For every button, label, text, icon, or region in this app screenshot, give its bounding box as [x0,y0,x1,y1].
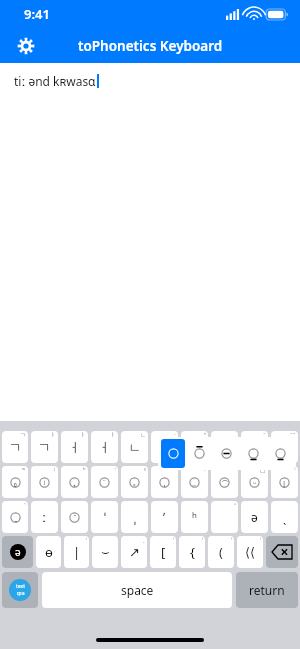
button[interactable]: ㄴ [121,431,148,463]
button[interactable]: ₊ [61,466,88,498]
staticText: ˈ [173,536,174,544]
staticText: ɵ [45,543,53,561]
staticText: toPhonetics Keyboard [78,37,223,55]
staticText: ˜˜ [290,431,296,439]
button[interactable]: ㄱ [2,431,28,463]
button[interactable]: ˌ [211,431,238,463]
button[interactable]: return [236,572,298,608]
staticText: ˎ [143,536,145,544]
staticText: ⌣ [101,546,110,559]
staticText: tiː ənd kʀwasɑ [14,73,96,89]
staticText: text [16,583,25,590]
button[interactable]: Backspace [266,536,298,568]
staticText: ə [251,509,258,525]
staticText: ₌ [133,478,136,488]
button[interactable]: ʲ [31,466,58,498]
staticText: ㅏ [80,431,86,439]
button[interactable]: .. [181,466,208,498]
staticText: ₊ [73,478,76,488]
button[interactable]: { [179,536,205,568]
staticText: .. [192,478,197,488]
button[interactable]: ⟨⟨ [237,536,263,568]
button[interactable]: ͡ [211,466,238,498]
staticText: ˺ [114,466,116,474]
staticText: ə [15,545,21,559]
button[interactable]: Settings [14,34,38,58]
button[interactable]: ː [31,501,58,533]
staticText: ʰ [83,466,86,474]
staticText: ˑ [174,431,176,439]
staticText: ˈ [231,536,232,544]
button[interactable]: ˌ [151,466,178,498]
button[interactable]: space [42,572,232,608]
staticText: ʲ [54,466,56,474]
staticText: ʷ [22,466,26,474]
button[interactable]: ˎ [271,501,298,533]
staticText: ㅏ [110,431,116,439]
button[interactable]: ( [208,536,234,568]
staticText: ↗ [129,545,140,560]
button[interactable]: ˈ [91,501,118,533]
staticText: ˎ [283,509,287,525]
button[interactable]: ㄱ [31,431,58,463]
button[interactable]: ¨ [91,466,118,498]
button[interactable]: ₀ [2,466,28,498]
button[interactable]: ˜˜ [271,431,298,463]
staticText: ˌ [134,509,136,525]
button[interactable]: ʼ [151,501,178,533]
staticText: ː [42,508,47,526]
staticText: ʴ [234,501,236,509]
staticText: 9:41 [24,5,50,23]
staticText: | [73,543,81,561]
staticText: return [249,582,285,598]
staticText: ʰ [192,509,197,525]
button[interactable]: | [271,466,298,498]
button[interactable]: ㅓ [61,431,88,463]
button[interactable]: ˈˈ [181,431,208,463]
button[interactable]: Switch symbols [2,536,33,568]
staticText: ㄱ [9,439,22,455]
staticText: ʲ [44,478,46,488]
button[interactable]: Switch keyboard [2,572,38,608]
staticText: ㄱ [20,431,26,439]
button[interactable]: ⌣ [92,536,118,568]
staticText: ˈ [86,536,87,544]
staticText: ᵑ [203,466,206,474]
staticText: ˈ [104,509,106,525]
button[interactable]: ᵕ [241,466,268,498]
button[interactable] [241,439,266,468]
button[interactable] [187,439,212,468]
button[interactable]: ˜ [241,431,268,463]
button[interactable] [161,439,185,468]
button[interactable]: ̆ [61,501,88,533]
staticText: ˌ [235,431,236,439]
staticText: □ [260,466,266,473]
button[interactable]: ˑ [151,431,178,463]
staticText: ₀ [14,478,17,488]
staticText: ʶ [173,466,176,474]
staticText: space [121,582,154,598]
staticText: ˠ [144,466,146,474]
button[interactable]: ə [241,501,268,533]
button[interactable]: ˌ [121,501,148,533]
staticText: ㅓ [68,439,81,455]
button[interactable] [214,439,239,468]
button[interactable]: ₌ [121,466,148,498]
staticText: ㅓ [98,439,111,455]
button[interactable]: ʴ [211,501,238,533]
staticText: [ [161,543,166,561]
staticText: ㅏ [50,431,56,439]
button[interactable]: ʰ [181,501,208,533]
button[interactable]: ㅓ [91,431,118,463]
button[interactable]: ̯ [2,501,28,533]
staticText: ˌ [164,478,166,488]
staticText: ¨ [102,477,107,487]
staticText: ㄴ [140,431,146,439]
button[interactable]: [ [150,536,176,568]
button[interactable]: ɵ [36,536,61,568]
button[interactable]: | [64,536,89,568]
button[interactable] [268,439,293,468]
button[interactable]: ↗ [121,536,147,568]
staticText: ˜ [263,431,266,439]
